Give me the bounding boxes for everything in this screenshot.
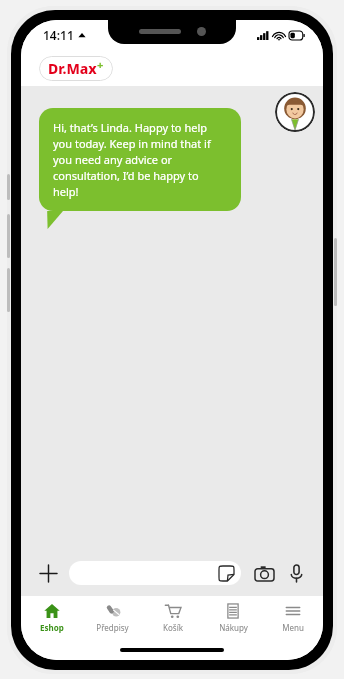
staticText: Košík <box>163 622 183 633</box>
button[interactable]: Add attachment <box>33 558 63 588</box>
button[interactable]: Voice message <box>281 558 311 588</box>
other: Stickers <box>219 566 234 581</box>
button[interactable]: Menu <box>263 596 323 640</box>
staticText: Nákupy <box>219 622 248 633</box>
staticText: + <box>97 57 104 72</box>
button[interactable]: Košík <box>143 596 203 640</box>
staticText: 14:11 <box>43 27 74 43</box>
button[interactable]: Eshop <box>21 596 82 640</box>
button[interactable]: Nákupy <box>203 596 263 640</box>
staticText: Předpisy <box>96 622 129 633</box>
staticText: Hi, that’s Linda. Happy to help you toda… <box>53 120 227 199</box>
button[interactable]: Předpisy <box>82 596 143 640</box>
staticText: Dr.Max <box>48 59 97 78</box>
button[interactable]: Stickers <box>69 561 241 585</box>
staticText: Menu <box>282 622 304 633</box>
button[interactable]: Camera <box>249 558 279 588</box>
button[interactable]: Dr.Max <box>39 56 113 81</box>
staticText: Eshop <box>40 622 64 633</box>
button[interactable]: Hi, that’s Linda. Happy to help you toda… <box>39 108 241 211</box>
